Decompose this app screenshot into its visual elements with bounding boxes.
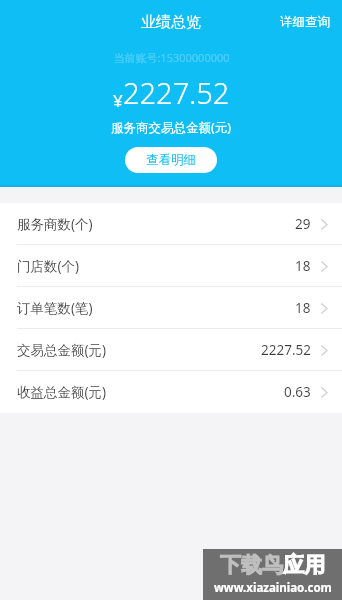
staticText: 详细查询 (280, 14, 330, 30)
staticText: 18 (295, 257, 311, 275)
button[interactable]: 查看明细 (125, 147, 217, 173)
staticText: 29 (295, 215, 311, 233)
staticText: 交易总金额(元) (17, 341, 107, 359)
button[interactable]: 收益总金额(元) (0, 371, 342, 413)
button[interactable]: 订单笔数(笔) (0, 287, 342, 329)
staticText: 下载鸟 (220, 552, 283, 578)
staticText: 应用 (283, 552, 325, 578)
staticText: www.xiazainiao.com (214, 580, 332, 596)
staticText: 当前账号:15300000000 (113, 50, 230, 65)
staticText: 18 (295, 299, 311, 317)
staticText: 2227.52 (261, 341, 311, 359)
staticText: 2227.52 (123, 73, 230, 112)
button[interactable]: 门店数(个) (0, 245, 342, 287)
staticText: ¥ (113, 89, 123, 112)
staticText: 服务商数(个) (17, 215, 93, 233)
staticText: 收益总金额(元) (17, 383, 107, 401)
staticText: 服务商交易总金额(元) (111, 119, 232, 136)
staticText: 订单笔数(笔) (17, 299, 93, 317)
button[interactable]: 交易总金额(元) (0, 329, 342, 371)
staticText: 门店数(个) (17, 257, 80, 275)
button[interactable]: 服务商数(个) (0, 203, 342, 245)
staticText: 业绩总览 (141, 13, 201, 32)
other: xiazainiao watermark (203, 549, 342, 600)
staticText: 查看明细 (146, 152, 196, 168)
staticText: 0.63 (284, 383, 311, 401)
button[interactable]: 详细查询 (268, 4, 342, 40)
